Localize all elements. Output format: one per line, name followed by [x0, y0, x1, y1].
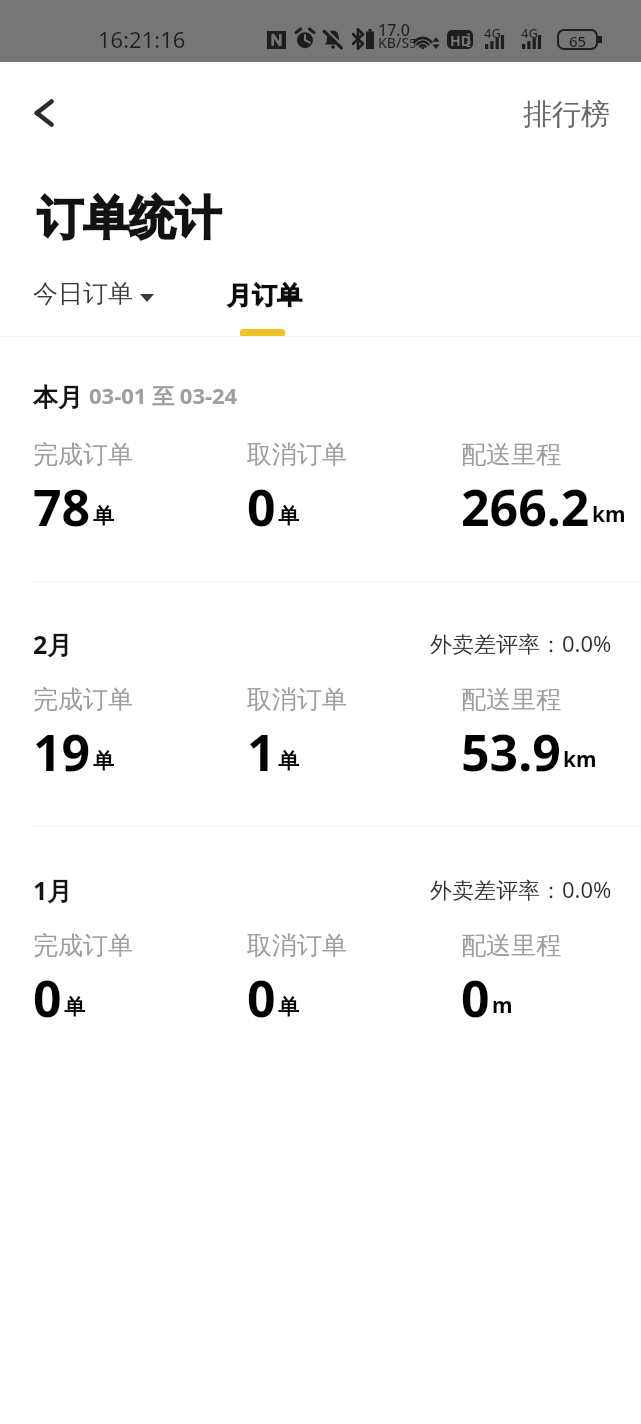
staticText: 0 — [247, 473, 276, 541]
staticText: 266.2 — [461, 473, 590, 541]
staticText: 0 — [461, 964, 490, 1032]
staticText: 单 — [93, 748, 114, 774]
staticText: 单 — [278, 748, 299, 774]
staticText: 本月 — [33, 382, 83, 413]
staticText: 单 — [93, 503, 114, 529]
staticText: 月订单 — [227, 280, 302, 311]
staticText: km — [592, 500, 626, 529]
staticText: 0 — [33, 964, 62, 1032]
button[interactable]: 排行榜 — [523, 96, 610, 133]
staticText: 1 — [247, 718, 276, 786]
staticText: 4G — [521, 24, 538, 42]
staticText: 取消订单 — [247, 439, 347, 470]
staticText: 完成订单 — [33, 684, 133, 715]
staticText: HD — [450, 31, 471, 49]
staticText: 1月 — [33, 873, 73, 907]
staticText: 0 — [247, 964, 276, 1032]
staticText: 配送里程 — [461, 684, 561, 715]
staticText: 完成订单 — [33, 930, 133, 961]
staticText: 取消订单 — [247, 684, 347, 715]
staticText: 2 — [466, 37, 472, 49]
staticText: 16:21:16 — [98, 24, 186, 54]
staticText: 1 — [466, 30, 472, 41]
button[interactable]: 外卖差评率：0.0% — [430, 628, 612, 658]
staticText: KB/S — [378, 33, 410, 52]
staticText: 17.0 — [378, 19, 410, 41]
staticText: 单 — [64, 994, 85, 1020]
staticText: 单 — [278, 503, 299, 529]
staticText: 今日订单 — [33, 278, 133, 309]
staticText: 19 — [33, 718, 91, 786]
staticText: 单 — [278, 994, 299, 1020]
staticText: 5 — [409, 34, 417, 52]
button[interactable]: Back — [20, 89, 68, 137]
staticText: 完成订单 — [33, 439, 133, 470]
staticText: 78 — [33, 473, 91, 541]
staticText: 订单统计 — [37, 190, 221, 248]
staticText: 2月 — [33, 627, 73, 661]
staticText: 配送里程 — [461, 439, 561, 470]
staticText: 取消订单 — [247, 930, 347, 961]
staticText: 排行榜 — [523, 96, 610, 133]
staticText: 4G — [484, 24, 501, 42]
button[interactable]: 今日订单 — [27, 268, 160, 319]
staticText: 65 — [569, 31, 587, 48]
button[interactable]: 月订单 — [219, 270, 306, 337]
staticText: 03-01 至 03-24 — [89, 380, 238, 410]
staticText: m — [492, 991, 513, 1020]
staticText: 53.9 — [461, 718, 561, 786]
staticText: km — [563, 745, 597, 774]
staticText: 配送里程 — [461, 930, 561, 961]
button[interactable]: 外卖差评率：0.0% — [430, 874, 612, 904]
